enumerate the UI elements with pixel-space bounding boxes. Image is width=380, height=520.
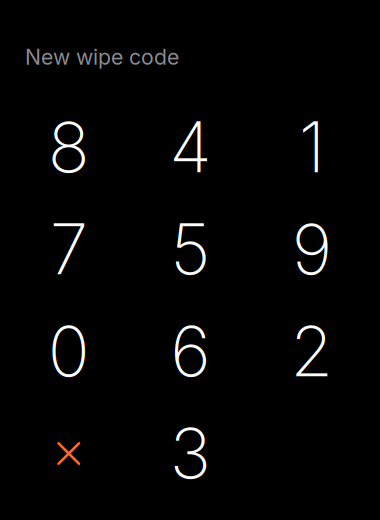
button[interactable]: 6 — [129, 300, 251, 402]
button[interactable]: 4 — [129, 96, 251, 198]
staticText: 7 — [50, 207, 88, 291]
button[interactable]: 5 — [129, 198, 251, 300]
staticText: 2 — [290, 309, 333, 393]
button[interactable]: 2 — [251, 300, 372, 402]
staticText: 0 — [48, 309, 90, 393]
staticText: 8 — [48, 105, 90, 189]
button[interactable]: 1 — [251, 96, 372, 198]
staticText: 3 — [170, 411, 211, 495]
button[interactable]: 9 — [251, 198, 372, 300]
button[interactable]: 3 — [129, 402, 251, 504]
button[interactable]: Cancel — [8, 402, 129, 504]
button[interactable]: 8 — [8, 96, 129, 198]
staticText: 4 — [169, 105, 211, 189]
button[interactable]: 7 — [8, 198, 129, 300]
staticText: 6 — [170, 309, 210, 393]
staticText: 1 — [299, 105, 325, 189]
button[interactable]: 0 — [8, 300, 129, 402]
staticText: 9 — [292, 207, 332, 291]
staticText: New wipe code — [25, 44, 179, 70]
staticText: 5 — [170, 207, 210, 291]
